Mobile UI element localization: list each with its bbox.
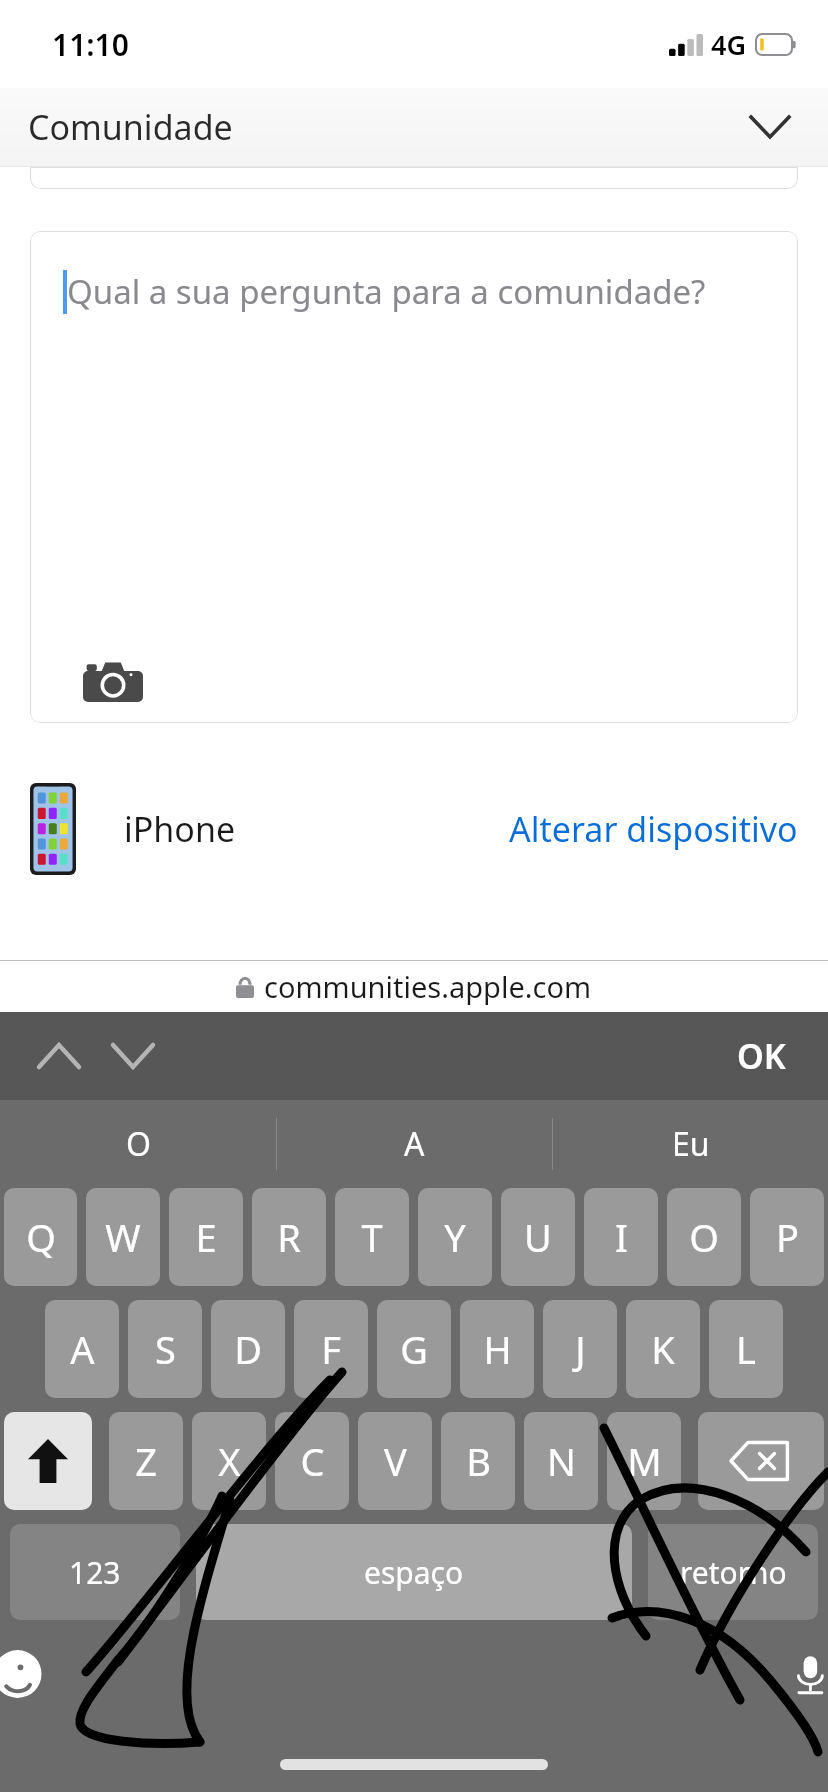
staticText: Q — [26, 1211, 56, 1263]
button[interactable]: Emoji — [0, 1646, 56, 1702]
staticText: L — [736, 1323, 756, 1375]
staticText: K — [651, 1323, 675, 1375]
button[interactable]: Adicionar foto — [82, 659, 144, 703]
staticText: Qual a sua pergunta para a comunidade? — [67, 269, 706, 314]
staticText: C — [300, 1435, 325, 1487]
button[interactable]: communities.apple.com — [0, 960, 828, 1012]
button[interactable]: E — [169, 1188, 243, 1286]
button[interactable]: C — [275, 1412, 349, 1510]
staticText: M — [627, 1435, 662, 1487]
staticText: Z — [135, 1435, 157, 1487]
button[interactable]: Alterar dispositivo — [509, 806, 798, 852]
button[interactable]: P — [750, 1188, 824, 1286]
button[interactable]: W — [86, 1188, 160, 1286]
button[interactable]: F — [294, 1300, 368, 1398]
button[interactable]: U — [501, 1188, 575, 1286]
button[interactable]: Z — [109, 1412, 183, 1510]
button[interactable]: L — [709, 1300, 783, 1398]
button[interactable]: Qual a sua pergunta para a comunidade? — [30, 231, 798, 723]
button[interactable]: 123 — [10, 1524, 180, 1620]
staticText: Y — [444, 1211, 466, 1263]
button[interactable]: Anterior — [22, 1019, 96, 1093]
button[interactable]: B — [441, 1412, 515, 1510]
button[interactable]: A — [277, 1100, 552, 1188]
button[interactable]: OK — [737, 1033, 786, 1079]
staticText: A — [70, 1323, 95, 1375]
button[interactable]: S — [128, 1300, 202, 1398]
staticText: B — [466, 1435, 491, 1487]
button[interactable]: Eu — [553, 1100, 828, 1188]
staticText: 4G — [711, 26, 747, 63]
staticText: X — [218, 1435, 241, 1487]
button[interactable] — [30, 167, 798, 189]
button[interactable]: V — [358, 1412, 432, 1510]
button[interactable]: O — [0, 1100, 276, 1188]
button[interactable]: G — [377, 1300, 451, 1398]
button[interactable]: Expandir — [734, 91, 806, 163]
staticText: Comunidade — [28, 104, 233, 150]
button[interactable]: J — [543, 1300, 617, 1398]
button[interactable]: R — [252, 1188, 326, 1286]
staticText: E — [195, 1211, 217, 1263]
button[interactable]: Apagar — [698, 1412, 824, 1510]
staticText: communities.apple.com — [264, 967, 592, 1006]
button[interactable]: O — [667, 1188, 741, 1286]
staticText: O — [126, 1122, 151, 1166]
button[interactable]: D — [211, 1300, 285, 1398]
button[interactable]: M — [607, 1412, 681, 1510]
staticText: OK — [737, 1033, 786, 1079]
button[interactable]: H — [460, 1300, 534, 1398]
staticText: U — [524, 1211, 552, 1263]
button[interactable]: X — [192, 1412, 266, 1510]
staticText: 11:10 — [52, 24, 129, 65]
staticText: G — [400, 1323, 428, 1375]
staticText: N — [547, 1435, 576, 1487]
staticText: T — [361, 1211, 383, 1263]
button[interactable]: Seguinte — [96, 1019, 170, 1093]
button[interactable]: espaço — [196, 1524, 632, 1620]
staticText: O — [689, 1211, 719, 1263]
staticText: W — [105, 1211, 141, 1263]
button[interactable]: I — [584, 1188, 658, 1286]
staticText: retorno — [680, 1552, 787, 1593]
button[interactable]: Shift — [4, 1412, 92, 1510]
staticText: P — [776, 1211, 799, 1263]
button[interactable]: N — [524, 1412, 598, 1510]
staticText: iPhone — [124, 806, 236, 852]
staticText: S — [155, 1323, 176, 1375]
button[interactable]: T — [335, 1188, 409, 1286]
staticText: 123 — [69, 1552, 121, 1593]
staticText: V — [384, 1435, 407, 1487]
staticText: J — [575, 1323, 586, 1375]
button[interactable]: Y — [418, 1188, 492, 1286]
button[interactable]: K — [626, 1300, 700, 1398]
staticText: D — [234, 1323, 262, 1375]
staticText: Eu — [672, 1122, 710, 1166]
button[interactable]: Comunidade — [0, 88, 828, 166]
staticText: H — [483, 1323, 512, 1375]
staticText: espaço — [364, 1552, 464, 1593]
staticText: A — [404, 1122, 425, 1166]
button[interactable]: retorno — [648, 1524, 818, 1620]
button[interactable]: Q — [4, 1188, 77, 1286]
staticText: F — [321, 1323, 341, 1375]
button[interactable]: A — [45, 1300, 119, 1398]
staticText: R — [277, 1211, 301, 1263]
button[interactable]: Ditado — [772, 1646, 828, 1702]
staticText: Alterar dispositivo — [509, 806, 798, 852]
staticText: I — [615, 1211, 628, 1263]
